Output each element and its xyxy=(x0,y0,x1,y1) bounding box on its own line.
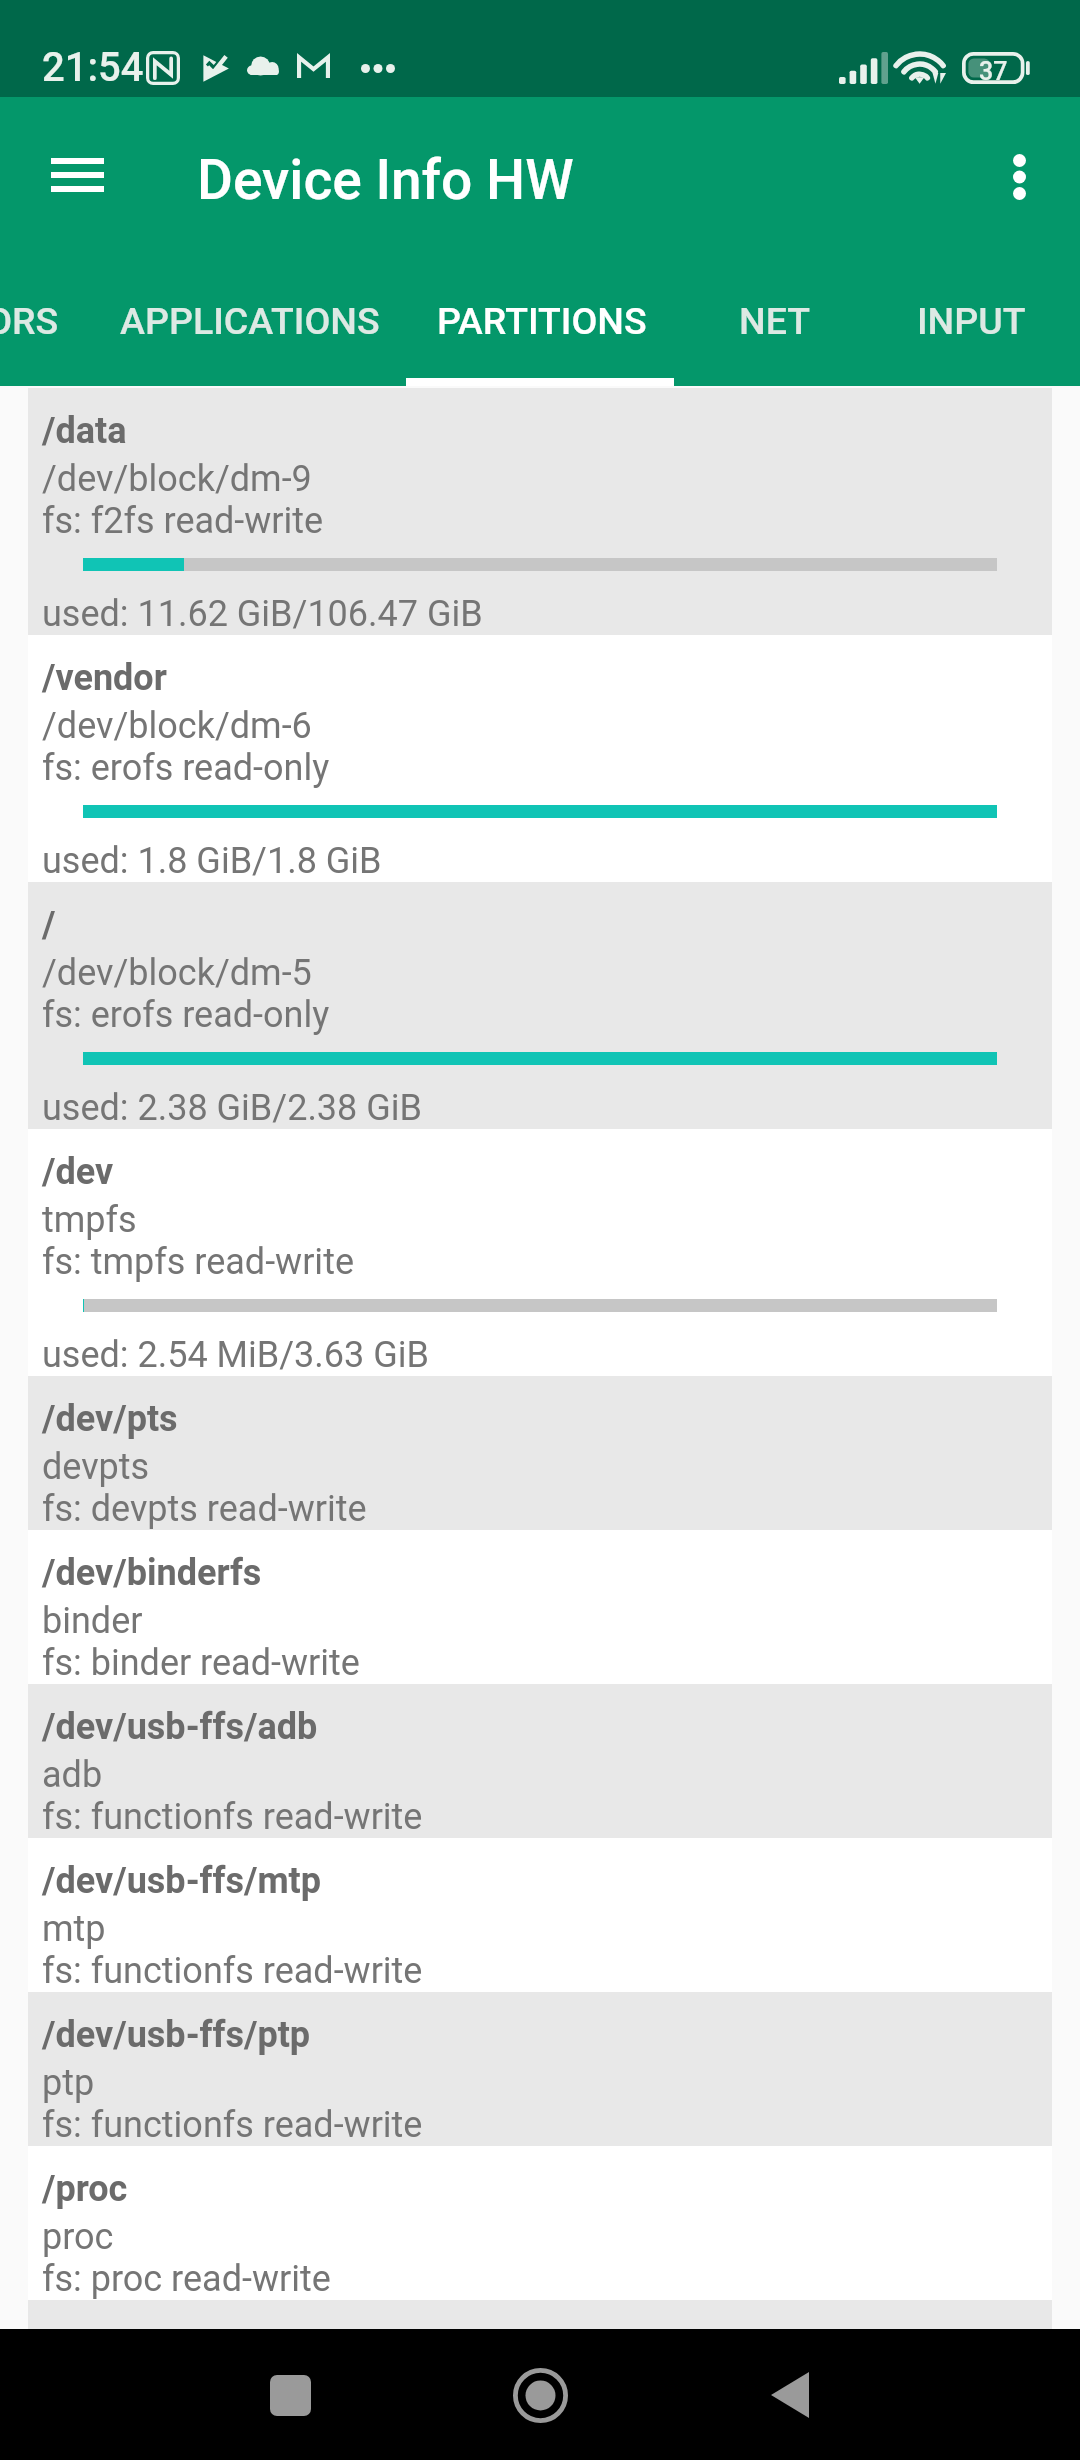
staticText: /dev/block/dm-6 xyxy=(42,705,312,747)
staticText: adb xyxy=(42,1754,103,1796)
staticText: 37 xyxy=(979,57,1008,86)
staticText: INPUT xyxy=(917,299,1026,343)
staticText: /dev/binderfs xyxy=(42,1552,262,1594)
button[interactable]: /dev/usb-ffs/adb xyxy=(28,1684,1052,1838)
button[interactable]: PARTITIONS xyxy=(426,257,658,378)
button[interactable]: /vendor xyxy=(28,635,1052,882)
staticText: /proc xyxy=(42,2168,128,2210)
staticText: /dev/block/dm-5 xyxy=(42,952,312,994)
staticText: used: 2.38 GiB/2.38 GiB xyxy=(42,1087,422,1129)
staticText: APPLICATIONS xyxy=(120,299,380,343)
button[interactable]: /dev/usb-ffs/ptp xyxy=(28,1992,1052,2146)
button[interactable]: APPLICATIONS xyxy=(73,257,426,378)
staticText: fs: tmpfs read-write xyxy=(42,1241,354,1283)
button[interactable]: /dev/pts xyxy=(28,1376,1052,1530)
staticText: fs: binder read-write xyxy=(42,1642,360,1684)
staticText: NET xyxy=(739,299,810,343)
staticText: /dev/usb-ffs/adb xyxy=(42,1706,318,1748)
staticText: PARTITIONS xyxy=(437,299,647,343)
staticText: SENSORS xyxy=(0,299,59,343)
staticText: fs: erofs read-only xyxy=(42,747,330,789)
staticText: used: 11.62 GiB/106.47 GiB xyxy=(42,593,483,635)
staticText: /vendor xyxy=(42,657,167,699)
staticText: binder xyxy=(42,1600,143,1642)
staticText: fs: functionfs read-write xyxy=(42,1796,423,1838)
button[interactable]: /dev/binderfs xyxy=(28,1530,1052,1684)
staticText: proc xyxy=(42,2216,114,2258)
button[interactable]: /dev/usb-ffs/mtp xyxy=(28,1838,1052,1992)
button[interactable]: / xyxy=(28,882,1052,1129)
button[interactable]: /dev xyxy=(28,1129,1052,1376)
staticText: /dev/block/dm-9 xyxy=(42,458,312,500)
button[interactable]: /proc xyxy=(28,2146,1052,2300)
staticText: /data xyxy=(42,410,127,452)
button[interactable]: More options xyxy=(962,128,1060,226)
staticText: tmpfs xyxy=(42,1199,137,1241)
button[interactable]: SENSORS xyxy=(0,257,73,378)
staticText: fs: f2fs read-write xyxy=(42,500,324,542)
staticText: 21:54 xyxy=(42,44,144,91)
staticText: mtp xyxy=(42,1908,106,1950)
staticText: /dev/usb-ffs/ptp xyxy=(42,2014,311,2056)
staticText: /dev/usb-ffs/mtp xyxy=(42,1860,321,1902)
staticText: fs: erofs read-only xyxy=(42,994,330,1036)
staticText: fs: functionfs read-write xyxy=(42,1950,423,1992)
button[interactable]: INPUT xyxy=(890,257,1053,378)
staticText: /dev/pts xyxy=(42,1398,178,1440)
button[interactable]: Back xyxy=(732,2337,848,2453)
staticText: used: 1.8 GiB/1.8 GiB xyxy=(42,840,382,882)
button[interactable]: Recent apps xyxy=(232,2337,348,2453)
staticText: ptp xyxy=(42,2062,95,2104)
staticText: /dev xyxy=(42,1151,114,1193)
staticText: / xyxy=(42,904,56,946)
staticText: fs: proc read-write xyxy=(42,2258,331,2300)
staticText: Device Info HW xyxy=(197,148,574,212)
button[interactable]: Home xyxy=(482,2337,598,2453)
button[interactable]: /data xyxy=(28,388,1052,635)
button[interactable]: Open navigation drawer xyxy=(25,130,129,228)
button[interactable]: NET xyxy=(658,257,890,378)
staticText: fs: devpts read-write xyxy=(42,1488,367,1530)
staticText: devpts xyxy=(42,1446,150,1488)
staticText: fs: functionfs read-write xyxy=(42,2104,423,2146)
staticText: used: 2.54 MiB/3.63 GiB xyxy=(42,1334,429,1376)
